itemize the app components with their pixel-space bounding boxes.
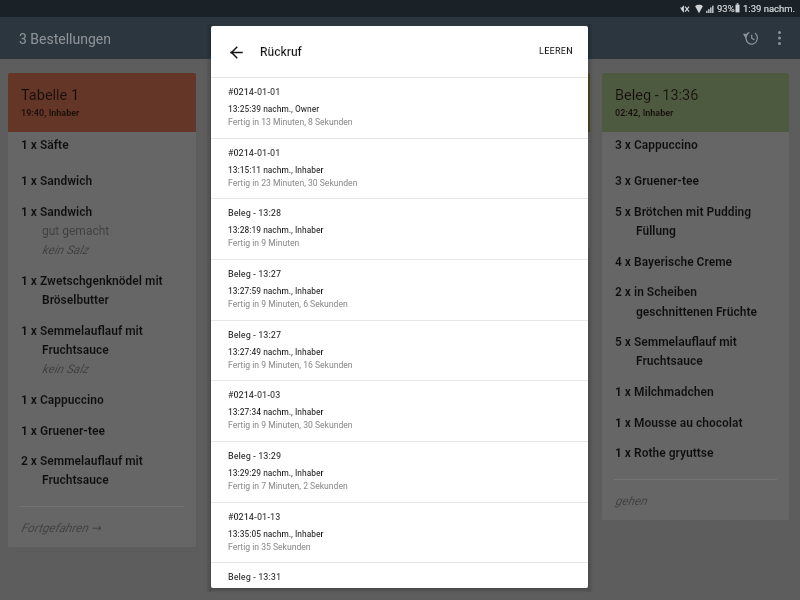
staticText: Beleg - 13:36 (615, 87, 699, 104)
staticText: geschnittenen Früchte (636, 305, 757, 319)
staticText: #0214-01-03 (228, 390, 281, 401)
staticText: Fertig in 35 Sekunden (228, 542, 311, 552)
staticText: Beleg - 13:28 (228, 208, 282, 219)
staticText: 13:28:19 nachm., Inhaber (228, 225, 324, 235)
staticText: 1 x Cappuccino (224, 138, 307, 152)
staticText: 1 x Sandwich (21, 205, 93, 219)
staticText: 1 x Rothe gryuttse (615, 446, 714, 460)
button[interactable]: Tabelle 1 (8, 73, 196, 547)
button[interactable]: Beleg - 13:27 (211, 259, 588, 320)
button[interactable]: #0214-01-13 (211, 502, 588, 563)
staticText: #0214-01-13 (228, 512, 281, 523)
staticText: gut gemacht (42, 224, 110, 238)
staticText: 1 x Cappuccino (21, 393, 104, 407)
staticText: 19:40, Inhaber (21, 108, 80, 119)
staticText: 1 x Milchmadchen (615, 385, 714, 399)
staticText: 00:41, Inhaber (224, 108, 283, 119)
staticText: Beleg - 13:29 (228, 451, 282, 462)
button[interactable]: Beleg - 13:27 (211, 320, 588, 381)
staticText: gehen (224, 222, 256, 236)
staticText: kein Salz (42, 362, 89, 376)
button[interactable]: Zurück (218, 34, 254, 70)
staticText: 1 x Sandwich (21, 174, 93, 188)
staticText: Beleg - 13:27 (228, 269, 282, 280)
staticText: 5 x Brötchen mit Pudding (615, 205, 752, 219)
staticText: 2 x in Scheiben (615, 285, 697, 299)
staticText: 3 x Gruener-tee (615, 174, 700, 188)
button[interactable]: Beleg - 13:31 (211, 562, 588, 588)
staticText: Fertig in 9 Minuten, 30 Sekunden (228, 420, 353, 430)
staticText: 13:15:11 nachm., Inhaber (228, 165, 324, 175)
staticText: 1 x Semmelauflauf mit (21, 324, 143, 338)
staticText: 02:42, Inhaber (615, 108, 674, 119)
staticText: Fortgefahren → (21, 521, 101, 535)
staticText: 1 x Säfte (21, 138, 69, 152)
staticText: Fruchtsauce (42, 343, 109, 357)
staticText: Fruchtsauce (42, 473, 109, 487)
staticText: 1 x Zwetschgenknödel mit (21, 274, 163, 288)
staticText: 1 x Sandwich (224, 174, 296, 188)
staticText: LEEREN (539, 46, 573, 57)
button[interactable]: #0214-01-03 (211, 380, 588, 441)
staticText: #0214-01-01 (228, 87, 281, 98)
button[interactable]: Beleg - 13:29 (211, 441, 588, 502)
staticText: 4 x Bayerische Creme (615, 255, 733, 269)
staticText: Beleg - 13:31 (228, 572, 282, 583)
staticText: Bröselbutter (42, 293, 109, 307)
staticText: Rückruf (260, 45, 302, 59)
staticText: Fertig in 7 Minuten, 2 Sekunden (228, 481, 348, 491)
staticText: Fertig in 23 Minuten, 30 Sekunden (228, 178, 358, 188)
staticText: #0214-01-01 (228, 148, 281, 159)
staticText: Beleg - 13:27 (228, 330, 282, 341)
staticText: Tabelle 1 (21, 87, 80, 104)
staticText: 5 x Semmelauflauf mit (615, 335, 737, 349)
staticText: gehen (615, 494, 647, 508)
staticText: 13:27:34 nachm., Inhaber (228, 407, 324, 417)
button[interactable]: LEEREN (531, 36, 581, 67)
staticText: Fruchtsauce (636, 354, 703, 368)
staticText: Fertig in 9 Minuten (228, 238, 300, 248)
staticText: 1 x Gruener-tee (21, 424, 106, 438)
button[interactable]: Weitere Optionen (760, 19, 798, 57)
staticText: 93% (717, 3, 735, 14)
button[interactable]: Beleg - 13:28 (211, 198, 588, 259)
staticText: 13:29:29 nachm., Inhaber (228, 468, 324, 478)
staticText: 1 x Mousse au chocolat (615, 416, 743, 430)
staticText: Fertig in 9 Minuten, 6 Sekunden (228, 299, 348, 309)
staticText: 13:25:39 nachm., Owner (228, 104, 320, 114)
staticText: 1:39 nachm. (743, 3, 796, 14)
staticText: 13:27:59 nachm., Inhaber (228, 286, 324, 296)
button[interactable]: Bestellverlauf (731, 19, 769, 57)
staticText: 2 x Semmelauflauf mit (21, 454, 143, 468)
staticText: Beleg - 13:31 (224, 87, 308, 104)
staticText: 3 Bestellungen (19, 31, 111, 47)
staticText: Fertig in 13 Minuten, 8 Sekunden (228, 117, 353, 127)
staticText: 13:35:05 nachm., Inhaber (228, 529, 324, 539)
button[interactable]: #0214-01-01 (211, 138, 588, 199)
button[interactable]: #0214-01-01 (211, 77, 588, 138)
staticText: Fertig in 9 Minuten, 16 Sekunden (228, 360, 353, 370)
staticText: kein Salz (42, 243, 89, 257)
staticText: Füllung (636, 224, 676, 238)
button[interactable]: Beleg - 13:31 (211, 73, 590, 248)
staticText: 13:27:49 nachm., Inhaber (228, 347, 324, 357)
staticText: 3 x Cappuccino (615, 138, 698, 152)
button[interactable]: Beleg - 13:36 (602, 73, 789, 520)
